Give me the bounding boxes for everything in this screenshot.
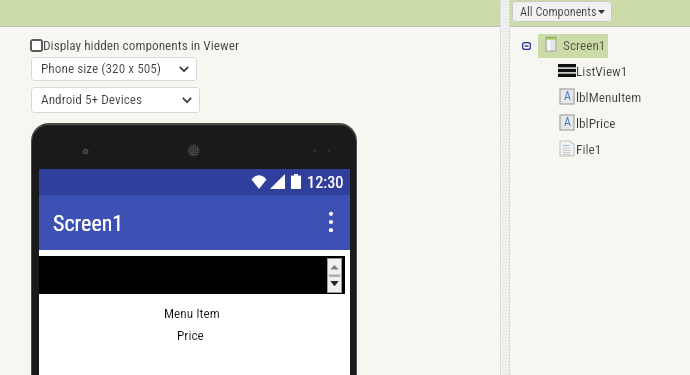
- button[interactable]: Resize panels: [500, 0, 510, 375]
- staticText: Screen1: [53, 211, 124, 237]
- staticText: File1: [576, 142, 602, 158]
- button[interactable]: All Components: [512, 1, 612, 22]
- staticText: Price: [177, 328, 204, 344]
- staticText: 12:30: [307, 173, 344, 192]
- button[interactable]: Collapse Screen1: [522, 42, 531, 50]
- button[interactable]: Display hidden components in Viewer: [30, 38, 239, 52]
- staticText: ListView1: [576, 64, 628, 80]
- staticText: A: [564, 115, 571, 129]
- staticText: Android 5+ Devices: [41, 92, 143, 108]
- staticText: Phone size (320 x 505): [41, 61, 162, 77]
- button[interactable]: More options: [324, 211, 338, 233]
- staticText: lblMenuItem: [576, 90, 642, 106]
- button[interactable]: [327, 258, 342, 293]
- button[interactable]: File1: [556, 139, 668, 160]
- button[interactable]: ListView1: [556, 61, 668, 82]
- staticText: lblPrice: [576, 116, 616, 132]
- button[interactable]: A: [556, 113, 668, 134]
- staticText: Menu Item: [164, 306, 220, 322]
- button[interactable]: Phone size (320 x 505): [31, 57, 197, 81]
- staticText: A: [564, 89, 571, 103]
- button[interactable]: A: [556, 87, 668, 108]
- button[interactable]: Screen1: [538, 34, 608, 58]
- staticText: Screen1: [563, 38, 606, 54]
- staticText: Display hidden components in Viewer: [43, 38, 239, 52]
- staticText: All Components: [520, 5, 597, 19]
- button[interactable]: Android 5+ Devices: [31, 87, 200, 113]
